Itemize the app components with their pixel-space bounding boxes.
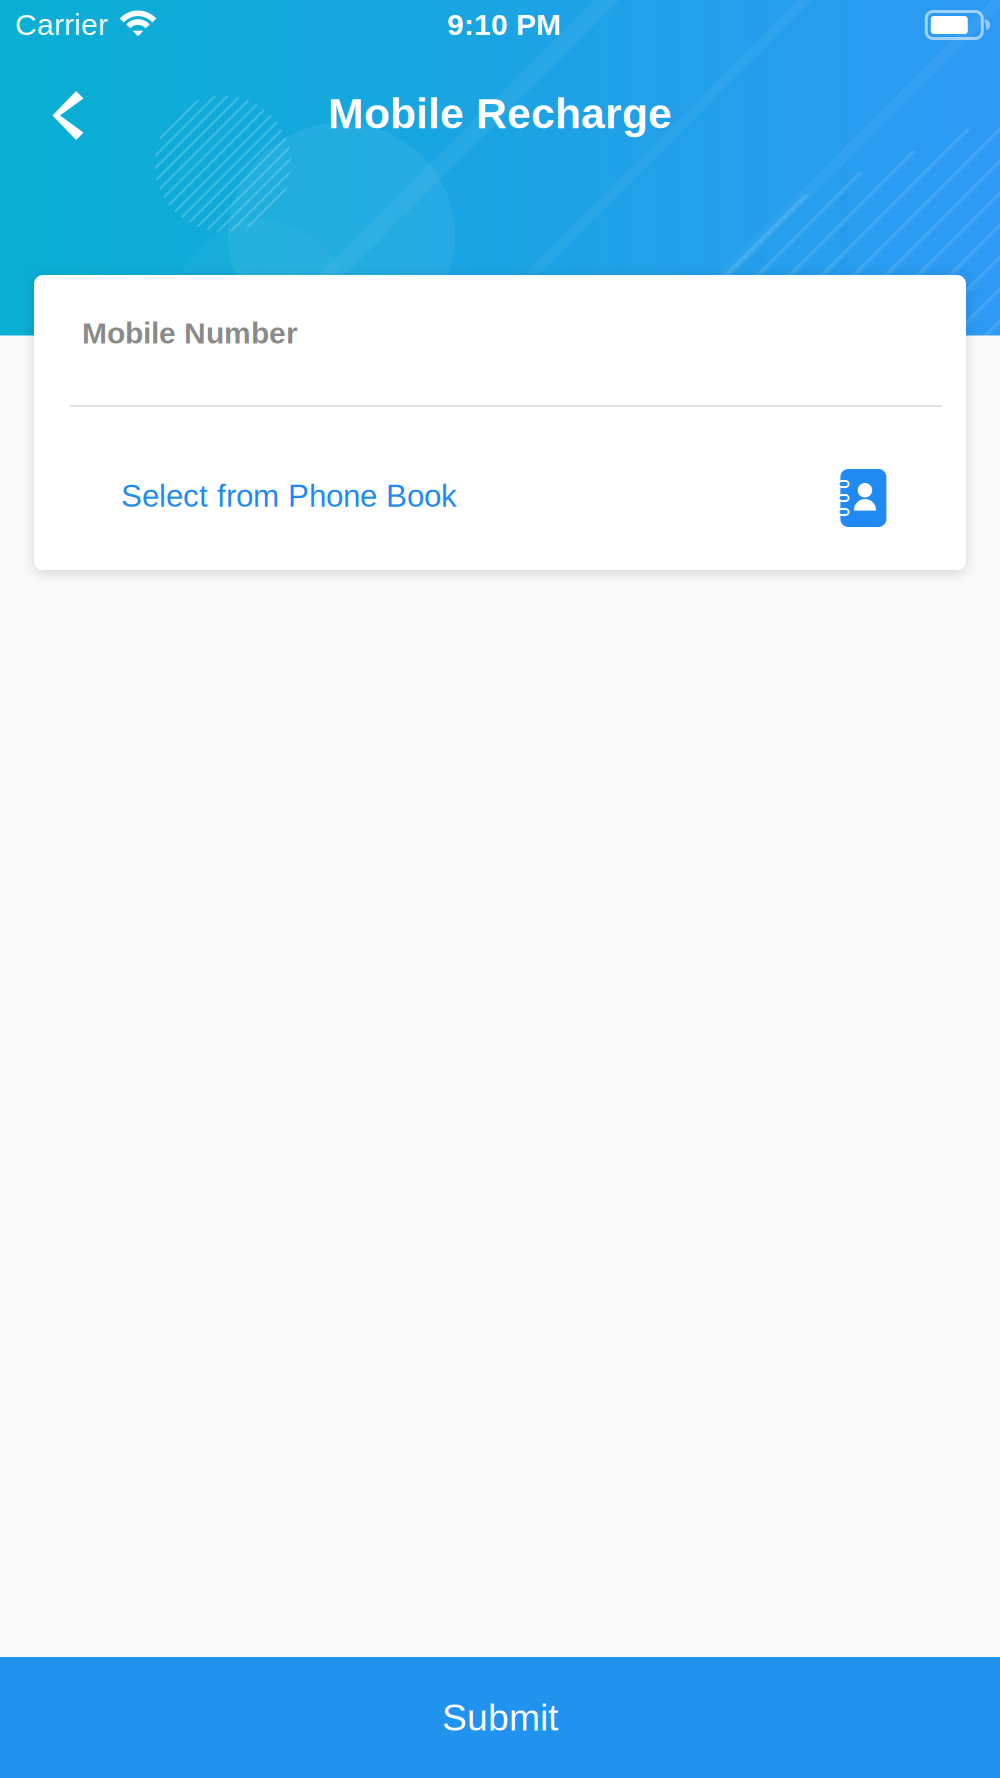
staticText: Carrier xyxy=(15,8,108,41)
staticText: Mobile Recharge xyxy=(328,90,672,137)
button[interactable]: Submit xyxy=(0,1657,1000,1778)
button[interactable]: Select from Phone Book xyxy=(34,407,966,570)
button[interactable]: Back xyxy=(20,67,116,163)
button[interactable]: Mobile Number xyxy=(34,275,966,406)
staticText: Mobile Number xyxy=(82,316,298,350)
staticText: 9:10 PM xyxy=(447,8,561,41)
staticText: Submit xyxy=(442,1697,558,1738)
staticText: Select from Phone Book xyxy=(121,478,457,513)
